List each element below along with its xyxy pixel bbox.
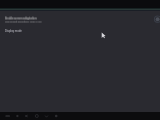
staticText: The current resolution: 1280 × 720 [5, 20, 42, 23]
button[interactable]: Back [3, 112, 12, 120]
staticText: Display mode [5, 29, 22, 32]
button[interactable] [0, 13, 160, 25]
button[interactable]: Recents [51, 112, 60, 120]
button[interactable]: Rotate [12, 112, 21, 120]
staticText: Enable screen adaptation [5, 17, 37, 20]
button[interactable]: Enable screen adaptation switch [150, 15, 160, 24]
staticText: Enable screen adaptation [5, 16, 37, 19]
button[interactable]: Power [32, 112, 41, 120]
button[interactable]: Volume [22, 112, 31, 120]
button[interactable]: Home [41, 112, 50, 120]
staticText: The current resolution: 1280 × 720 [5, 21, 42, 24]
button[interactable]: Display mode [0, 26, 160, 36]
